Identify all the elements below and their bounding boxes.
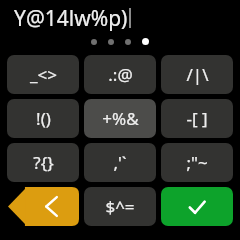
- button[interactable]: !(): [7, 99, 79, 138]
- button[interactable]: Backspace: [7, 187, 79, 226]
- button[interactable]: $^=: [84, 187, 156, 226]
- button[interactable]: ;"~: [161, 143, 233, 182]
- staticText: .:@: [108, 63, 133, 86]
- button[interactable]: -[ ]: [161, 99, 233, 138]
- staticText: !(): [36, 107, 51, 130]
- button[interactable]: /|\: [161, 55, 233, 94]
- staticText: Y@14lw%p): [14, 4, 128, 32]
- button[interactable]: Confirm: [161, 187, 233, 226]
- staticText: ;"~: [186, 151, 208, 174]
- button[interactable]: +%&: [84, 99, 156, 138]
- staticText: $^=: [105, 195, 135, 218]
- staticText: ,'`: [113, 151, 127, 174]
- button[interactable]: ,'`: [84, 143, 156, 182]
- button[interactable]: ?{}: [7, 143, 79, 182]
- staticText: _<>: [30, 63, 57, 86]
- staticText: /|\: [186, 63, 209, 86]
- button[interactable]: _<>: [7, 55, 79, 94]
- staticText: +%&: [102, 107, 139, 130]
- staticText: ?{}: [33, 151, 54, 174]
- staticText: -[ ]: [186, 107, 208, 130]
- button[interactable]: .:@: [84, 55, 156, 94]
